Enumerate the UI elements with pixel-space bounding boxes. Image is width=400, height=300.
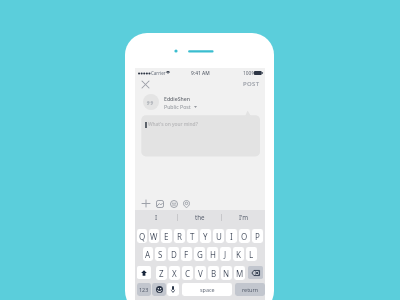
button[interactable]: U — [213, 229, 224, 243]
staticText: C — [185, 268, 191, 279]
button[interactable]: Shift — [137, 266, 151, 279]
button[interactable]: I — [135, 210, 177, 224]
staticText: Public Post — [164, 103, 191, 110]
staticText: I — [230, 231, 233, 242]
button[interactable]: W — [149, 229, 159, 243]
button[interactable]: A — [143, 247, 153, 261]
button[interactable]: Y — [200, 229, 211, 243]
staticText: P — [255, 231, 260, 242]
staticText: 9:41 AM — [191, 70, 210, 77]
button[interactable]: return — [235, 283, 265, 296]
button[interactable]: E — [161, 229, 172, 243]
button[interactable]: C — [182, 266, 193, 280]
button[interactable]: the — [178, 210, 221, 224]
button[interactable]: O — [239, 229, 250, 243]
staticText: J — [224, 249, 227, 260]
button[interactable]: T — [187, 229, 198, 243]
staticText: 123 — [139, 286, 149, 293]
staticText: return — [242, 286, 258, 293]
button[interactable]: X — [169, 266, 180, 280]
staticText: G — [197, 249, 203, 260]
staticText: space — [200, 286, 215, 293]
staticText: O — [241, 231, 248, 242]
staticText: X — [172, 268, 177, 279]
staticText: Y — [203, 231, 208, 242]
button[interactable]: I — [226, 229, 237, 243]
staticText: B — [211, 268, 217, 279]
button[interactable]: L — [246, 247, 257, 261]
button[interactable]: Z — [156, 266, 167, 280]
staticText: I — [155, 213, 158, 221]
staticText: D — [171, 249, 177, 260]
staticText: U — [216, 231, 222, 242]
button[interactable]: What's on your mind? — [145, 121, 198, 128]
staticText: R — [177, 231, 182, 242]
button[interactable]: Emoji — [168, 198, 179, 209]
button[interactable]: I'm — [222, 210, 265, 224]
button[interactable]: R — [174, 229, 185, 243]
button[interactable]: 123 — [137, 283, 151, 296]
staticText: H — [210, 249, 216, 260]
button[interactable]: Close — [139, 78, 151, 90]
staticText: Q — [139, 231, 146, 242]
staticText: E — [164, 231, 169, 242]
staticText: M — [236, 268, 244, 279]
button[interactable]: Dictate — [167, 283, 179, 296]
button[interactable]: G — [194, 247, 205, 261]
button[interactable]: Backspace — [248, 266, 263, 279]
button[interactable]: V — [195, 266, 206, 280]
staticText: S — [158, 249, 163, 260]
button[interactable]: Location — [181, 198, 192, 209]
button[interactable]: F — [181, 247, 192, 261]
button[interactable]: D — [168, 247, 179, 261]
staticText: Z — [159, 268, 164, 279]
staticText: the — [195, 213, 205, 221]
button[interactable]: POST — [243, 78, 260, 89]
button[interactable]: Q — [137, 229, 147, 243]
button[interactable]: Emoji keyboard — [152, 283, 166, 296]
button[interactable]: J — [220, 247, 231, 261]
button[interactable]: space — [182, 283, 232, 296]
staticText: F — [184, 249, 189, 260]
staticText: What's on your mind? — [148, 121, 198, 128]
staticText: POST — [243, 80, 260, 88]
staticText: A — [145, 249, 151, 260]
staticText: N — [223, 268, 230, 279]
staticText: 100% — [243, 70, 256, 77]
button[interactable]: M — [234, 266, 245, 280]
staticText: K — [236, 249, 241, 260]
staticText: V — [198, 268, 203, 279]
button[interactable]: Photo — [154, 198, 165, 209]
button[interactable]: S — [155, 247, 166, 261]
button[interactable]: K — [233, 247, 244, 261]
staticText: W — [150, 231, 158, 242]
staticText: EddieShen — [164, 95, 191, 102]
staticText: T — [190, 231, 195, 242]
staticText: L — [249, 249, 254, 260]
button[interactable]: H — [207, 247, 218, 261]
staticText: Carrier — [151, 70, 166, 76]
staticText: I'm — [239, 213, 249, 221]
button[interactable]: P — [252, 229, 263, 243]
button[interactable]: B — [208, 266, 219, 280]
button[interactable]: N — [221, 266, 232, 280]
button[interactable]: Add — [140, 198, 151, 209]
